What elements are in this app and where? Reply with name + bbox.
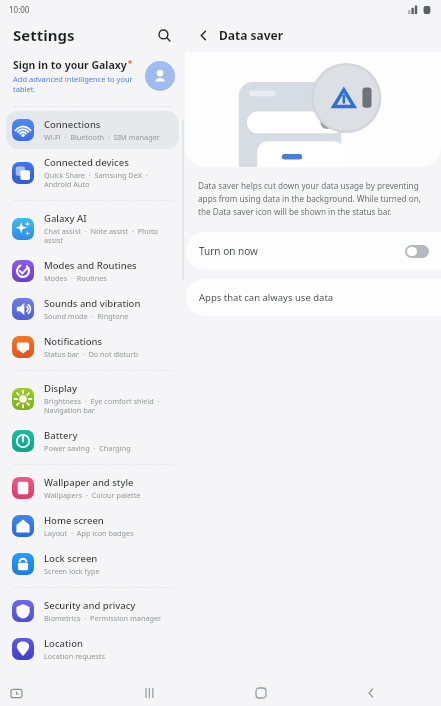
button[interactable]: Home	[250, 682, 272, 704]
staticText: Wallpaper and style	[44, 476, 134, 489]
staticText: Settings	[13, 25, 75, 45]
button[interactable]: Galaxy AI	[6, 205, 179, 252]
button[interactable]: Connections	[6, 111, 179, 149]
button[interactable]: Battery	[6, 422, 179, 460]
button[interactable]: Modes and Routines	[6, 252, 179, 290]
staticText: Location	[44, 637, 83, 650]
staticText: Modes and Routines	[44, 259, 137, 272]
staticText: Sound mode · Ringtone	[44, 311, 129, 321]
button[interactable]: Display	[6, 375, 179, 422]
staticText: Brightness · Eye comfort shield · Naviga…	[44, 396, 173, 415]
staticText: Layout · App icon badges	[44, 528, 134, 538]
button[interactable]: Lock screen	[6, 545, 179, 583]
staticText: Power saving · Charging	[44, 443, 131, 453]
button[interactable]: Sign in to your Galaxy	[0, 52, 185, 102]
staticText: Quick Share · Samsung DeX · Android Auto	[44, 170, 173, 189]
button[interactable]: Connected devices	[6, 149, 179, 196]
button[interactable]: Home screen	[6, 507, 179, 545]
button[interactable]: Location	[6, 630, 179, 668]
staticText: Location requests	[44, 651, 105, 661]
button[interactable]: Apps that can always use data	[186, 279, 441, 316]
staticText: Data saver	[219, 27, 284, 43]
button[interactable]: Notifications	[6, 328, 179, 366]
staticText: Data saver helps cut down your data usag…	[198, 180, 427, 218]
button[interactable]: Back	[360, 682, 382, 704]
staticText: Sounds and vibration	[44, 297, 141, 310]
staticText: Galaxy AI	[44, 212, 87, 225]
staticText: Connections	[44, 118, 101, 131]
staticText: Battery	[44, 429, 78, 442]
staticText: Lock screen	[44, 552, 98, 565]
staticText: Display	[44, 382, 78, 395]
button[interactable]: Wallpaper and style	[6, 469, 179, 507]
staticText: Wi-Fi · Bluetooth · SIM manager	[44, 132, 160, 142]
button[interactable]: Sounds and vibration	[6, 290, 179, 328]
button[interactable]: Recents	[139, 682, 161, 704]
button[interactable]: Back	[192, 24, 214, 46]
staticText: Status bar · Do not disturb	[44, 349, 139, 359]
button[interactable]: Turn on now	[186, 232, 441, 270]
staticText: Home screen	[44, 514, 104, 527]
staticText: Connected devices	[44, 156, 129, 169]
staticText: Sign in to your Galaxy	[13, 58, 127, 72]
staticText: Turn on now	[199, 244, 405, 258]
staticText: Apps that can always use data	[199, 291, 334, 304]
staticText: 10:00	[9, 4, 30, 15]
button[interactable]: Search	[151, 22, 177, 48]
staticText: Biometrics · Permission manager	[44, 613, 162, 623]
button[interactable]: Screenshot	[6, 683, 26, 703]
staticText: Notifications	[44, 335, 103, 348]
staticText: Add advanced intelligence to your tablet…	[13, 74, 139, 94]
staticText: Chat assist · Note assist · Photo assist	[44, 226, 173, 245]
staticText: Security and privacy	[44, 599, 136, 612]
staticText: Modes · Routines	[44, 273, 107, 283]
staticText: Screen lock type	[44, 566, 100, 576]
staticText: Wallpapers · Colour palette	[44, 490, 141, 500]
button[interactable]: Security and privacy	[6, 592, 179, 630]
